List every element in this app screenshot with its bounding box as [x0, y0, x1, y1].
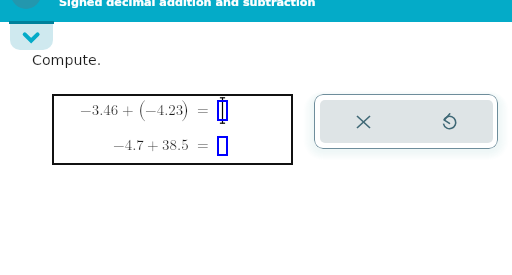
staticText: Compute.	[32, 52, 102, 69]
staticText: )	[181, 99, 190, 120]
staticText: +	[122, 103, 134, 118]
staticText: 38.5	[162, 138, 189, 153]
staticText: +	[147, 138, 159, 153]
button[interactable]: Answer input	[217, 100, 228, 121]
staticText: −4.7	[113, 138, 144, 153]
button[interactable]: Clear	[320, 100, 406, 143]
button[interactable]: Undo	[406, 100, 493, 143]
staticText: (	[138, 99, 147, 120]
staticText: =	[197, 103, 209, 118]
button[interactable]: Answer input	[217, 136, 228, 156]
staticText: Signed decimal addition and subtraction	[59, 0, 316, 9]
staticText: −3.46	[80, 103, 119, 118]
staticText: −4.23	[145, 103, 184, 118]
button[interactable]: Collapse section	[10, 24, 53, 50]
staticText: =	[197, 138, 209, 153]
